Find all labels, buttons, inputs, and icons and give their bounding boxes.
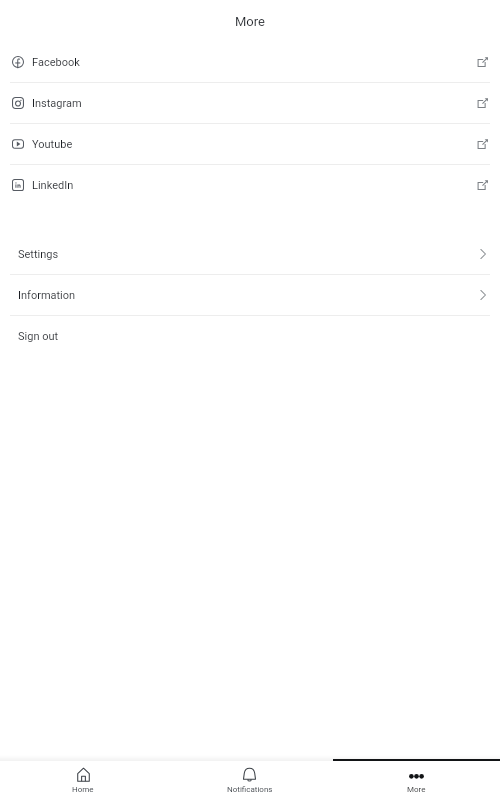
staticText: Notifications [227,785,273,794]
button[interactable]: Open LinkedIn [471,174,493,196]
staticText: Home [72,785,94,794]
button[interactable]: Instagram [0,83,500,123]
staticText: Instagram [32,97,82,110]
button[interactable]: Information [0,275,500,315]
button[interactable]: More [333,761,500,800]
button[interactable]: Sign out [0,316,500,356]
button[interactable]: Youtube [0,124,500,164]
button[interactable]: Open Facebook [471,51,493,73]
button[interactable]: Open Instagram [471,92,493,114]
staticText: Settings [18,248,59,261]
staticText: Sign out [18,330,59,343]
other: Open Information [472,284,494,306]
button[interactable]: LinkedIn [0,165,500,205]
button[interactable]: Facebook [0,42,500,82]
button[interactable]: Home [0,761,166,800]
staticText: More [407,785,426,794]
staticText: Information [18,289,76,302]
button[interactable]: Open Youtube [471,133,493,155]
button[interactable]: Settings [0,234,500,274]
button[interactable]: Notifications [166,761,333,800]
staticText: LinkedIn [32,179,74,192]
staticText: More [235,14,265,29]
other: Open Settings [472,243,494,265]
staticText: Youtube [32,138,73,151]
staticText: Facebook [32,56,80,69]
